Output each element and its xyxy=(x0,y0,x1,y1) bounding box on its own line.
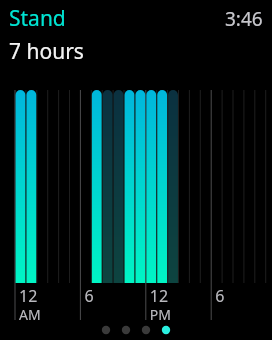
button[interactable]: Stand activity chart xyxy=(0,0,272,340)
